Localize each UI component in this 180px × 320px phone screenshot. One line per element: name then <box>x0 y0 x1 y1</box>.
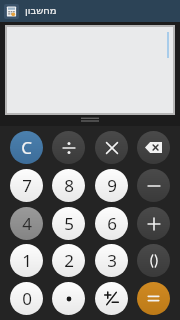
button[interactable]: App icon <box>4 4 19 19</box>
staticText: C <box>21 136 32 159</box>
button[interactable]: Parentheses <box>137 244 170 277</box>
button[interactable]: 9 <box>95 169 128 202</box>
staticText: 3 <box>107 249 117 272</box>
staticText: 4 <box>22 212 32 235</box>
button[interactable]: 8 <box>52 169 85 202</box>
staticText: מחשבון <box>25 5 57 17</box>
button[interactable]: 7 <box>10 169 43 202</box>
button[interactable]: 6 <box>95 207 128 240</box>
button[interactable]: Plus minus <box>95 282 128 315</box>
button[interactable]: Backspace <box>137 131 170 164</box>
button[interactable]: Divide <box>52 131 85 164</box>
button[interactable]: Clear <box>10 131 43 164</box>
staticText: 8 <box>64 174 74 197</box>
staticText: 1 <box>22 249 32 272</box>
staticText: 7 <box>22 174 32 197</box>
button[interactable]: Minus <box>137 169 170 202</box>
staticText: 5 <box>64 212 74 235</box>
staticText: 0 <box>22 287 32 310</box>
button[interactable]: 5 <box>52 207 85 240</box>
button[interactable]: 4 <box>10 207 43 240</box>
button[interactable]: Equals <box>137 282 170 315</box>
staticText: 9 <box>107 174 117 197</box>
button[interactable]: 2 <box>52 244 85 277</box>
button[interactable]: 0 <box>10 282 43 315</box>
button[interactable]: 3 <box>95 244 128 277</box>
button[interactable]: Decimal point <box>52 282 85 315</box>
button[interactable]: Multiply <box>95 131 128 164</box>
staticText: 6 <box>107 212 117 235</box>
button[interactable]: Plus <box>137 207 170 240</box>
staticText: 2 <box>64 249 74 272</box>
button[interactable]: 1 <box>10 244 43 277</box>
button[interactable] <box>7 27 173 113</box>
